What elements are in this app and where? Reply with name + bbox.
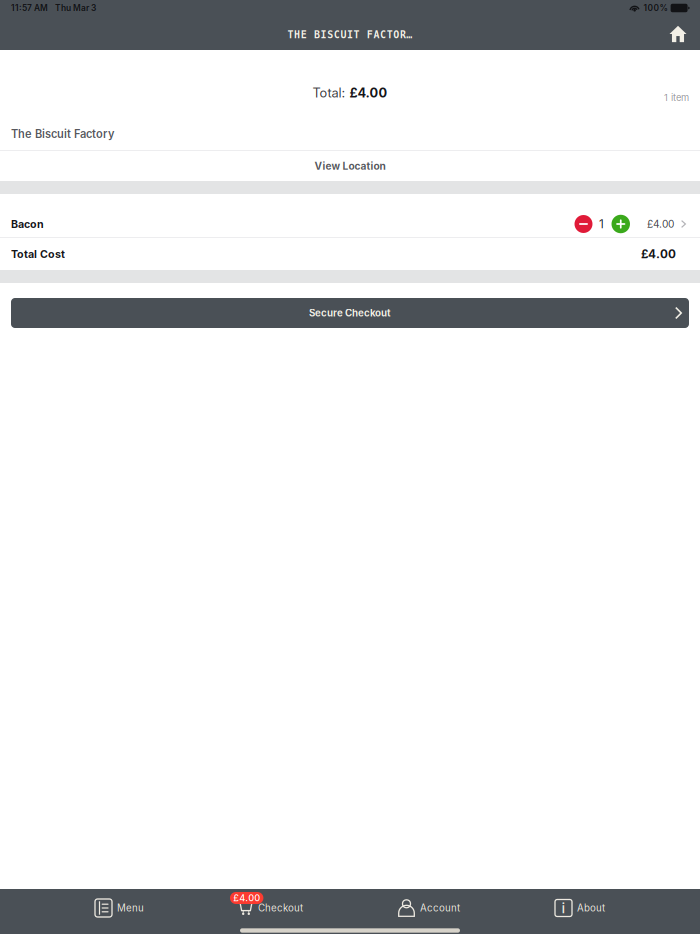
staticText: £4.00 — [647, 218, 674, 230]
staticText: The Biscuit Factory — [11, 127, 115, 141]
staticText: Bacon — [11, 217, 44, 230]
staticText: Secure Checkout — [309, 307, 391, 319]
staticText: £4.00 — [349, 85, 387, 100]
staticText: 11:57 AM — [11, 3, 48, 13]
staticText: Total: — [312, 85, 349, 100]
button[interactable]: Menu — [95, 889, 144, 927]
staticText: Thu Mar 3 — [55, 3, 96, 13]
staticText: £4.00 — [233, 892, 260, 903]
staticText: 1 item — [664, 92, 689, 103]
button[interactable]: Account — [398, 889, 460, 927]
staticText: Menu — [117, 902, 144, 914]
button[interactable]: Home — [660, 16, 700, 50]
button[interactable]: View Location — [0, 151, 700, 181]
staticText: View Location — [314, 160, 385, 172]
staticText: About — [577, 902, 605, 914]
staticText: 1 — [599, 217, 604, 231]
staticText: i — [561, 899, 565, 917]
button[interactable]: The Biscuit Factory — [0, 118, 700, 150]
staticText: THE BISCUIT FACTORY — [287, 29, 413, 41]
staticText: Total Cost — [11, 247, 65, 260]
button[interactable]: i — [555, 889, 605, 927]
staticText: £4.00 — [641, 247, 676, 261]
button[interactable]: Bacon — [0, 194, 700, 237]
button[interactable]: £4.00 — [239, 889, 303, 927]
staticText: 100% — [644, 3, 668, 13]
button[interactable]: Secure Checkout — [11, 298, 689, 328]
staticText: Account — [420, 902, 460, 914]
staticText: Checkout — [258, 902, 303, 914]
